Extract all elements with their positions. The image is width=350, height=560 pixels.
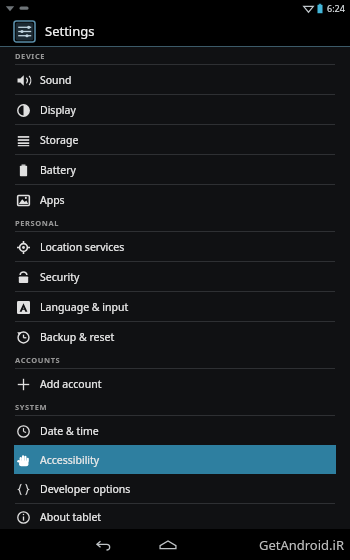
staticText: PERSONAL [15,218,60,228]
button[interactable]: Backup & reset [0,322,350,351]
staticText: About tablet [40,510,102,524]
staticText: ACCOUNTS [15,355,61,365]
staticText: Add account [40,377,102,391]
staticText: Backup & reset [40,330,115,344]
button[interactable]: Display [0,95,350,124]
button[interactable]: Back [88,530,118,560]
button[interactable]: Apps [0,185,350,214]
staticText: Language & input [40,300,129,314]
button[interactable]: Date & time [0,416,350,445]
staticText: Sound [40,73,72,87]
staticText: Date & time [40,424,99,438]
button[interactable]: Location services [0,232,350,261]
staticText: Battery [40,163,76,177]
staticText: DEVICE [15,51,46,61]
button[interactable]: Accessibility [14,445,336,474]
button[interactable]: Developer options [0,474,350,503]
staticText: Settings [45,22,95,40]
staticText: SYSTEM [15,402,48,412]
staticText: Security [40,270,80,284]
staticText: Location services [40,240,125,254]
button[interactable]: About tablet [0,504,350,529]
button[interactable]: Sound [0,65,350,94]
staticText: Storage [40,133,79,147]
staticText: GetAndroid.iR [258,536,344,554]
button[interactable]: Battery [0,155,350,184]
button[interactable]: Home [153,530,183,560]
button[interactable]: Add account [0,369,350,398]
button[interactable]: Storage [0,125,350,154]
staticText: 6:24 [327,2,345,14]
button[interactable]: Settings [0,16,350,46]
button[interactable]: Language & input [0,292,350,321]
staticText: Apps [40,193,65,207]
staticText: Accessibility [40,453,100,467]
button[interactable]: Security [0,262,350,291]
staticText: Developer options [40,482,131,496]
staticText: Display [40,103,76,117]
